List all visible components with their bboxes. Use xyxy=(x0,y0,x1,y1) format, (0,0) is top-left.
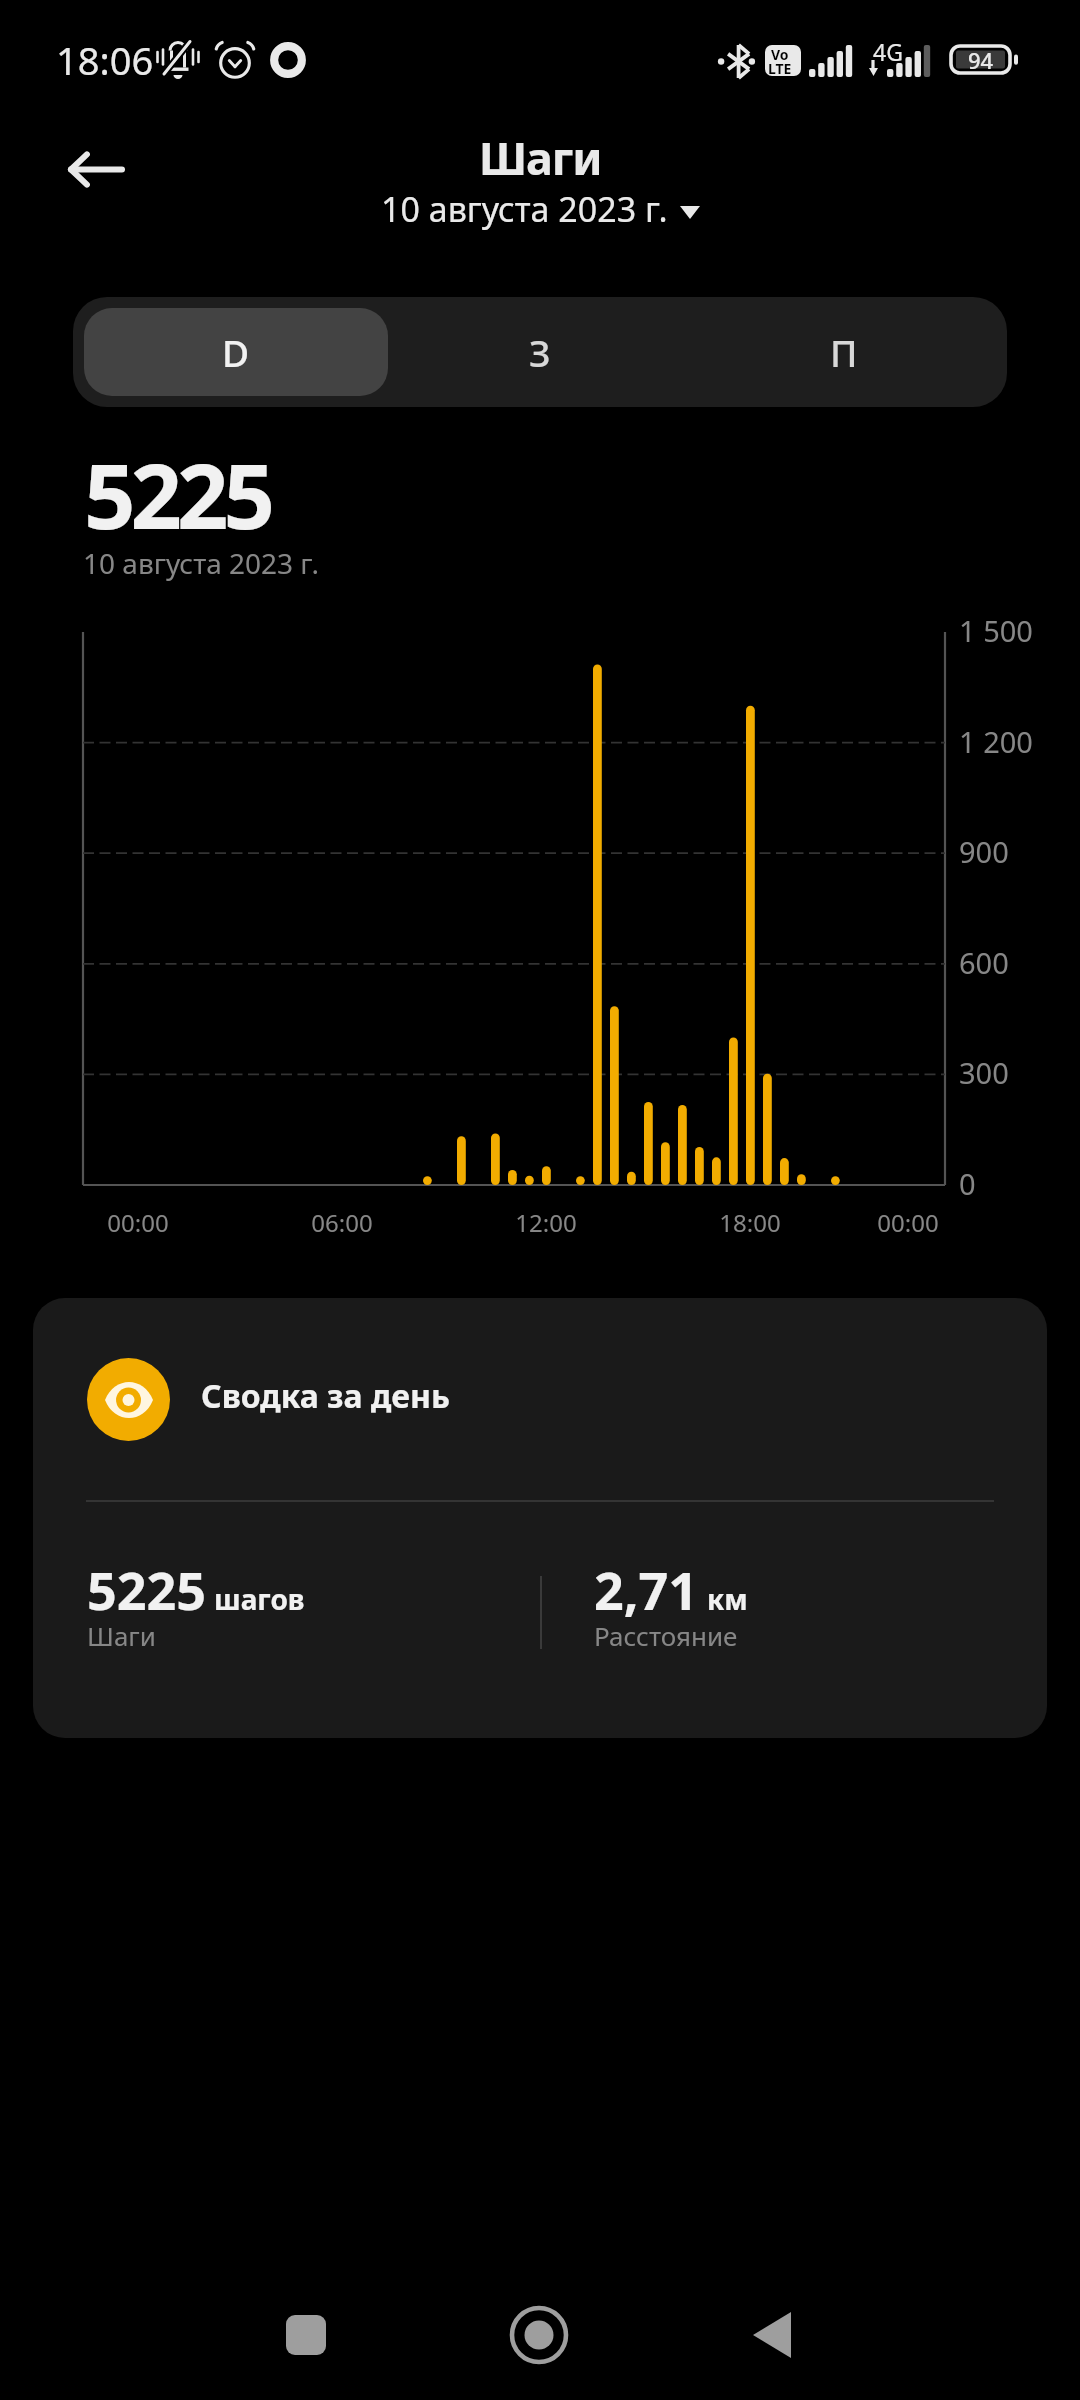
staticText: 18:06 xyxy=(56,34,154,86)
staticText: 600 xyxy=(959,943,1009,982)
button[interactable]: Назад xyxy=(44,118,146,220)
staticText: 5225 xyxy=(84,433,270,556)
button[interactable]: Последние приложения xyxy=(231,2260,381,2400)
button[interactable]: З xyxy=(388,308,692,396)
staticText: 00:00 xyxy=(877,1206,939,1239)
staticText: D xyxy=(222,327,250,377)
staticText: 94 xyxy=(968,45,994,75)
staticText: 1 200 xyxy=(959,722,1033,761)
staticText: шагов xyxy=(214,1580,305,1618)
staticText: 18:00 xyxy=(719,1206,781,1239)
staticText: 900 xyxy=(959,832,1009,871)
staticText: З xyxy=(529,327,551,377)
button[interactable]: Сводка за день xyxy=(33,1298,1047,1738)
button[interactable]: D xyxy=(84,308,388,396)
staticText: 00:00 xyxy=(107,1206,169,1239)
button[interactable]: П xyxy=(692,308,996,396)
staticText: 06:00 xyxy=(311,1206,373,1239)
staticText: Шаги xyxy=(479,127,602,188)
button[interactable]: Назад xyxy=(697,2260,847,2400)
staticText: км xyxy=(707,1580,748,1618)
staticText: Сводка за день xyxy=(201,1374,450,1418)
staticText: 10 августа 2023 г. xyxy=(381,186,668,232)
button[interactable]: 10 августа 2023 г. xyxy=(375,183,706,235)
staticText: 12:00 xyxy=(515,1206,577,1239)
staticText: Vo xyxy=(771,45,789,64)
staticText: 0 xyxy=(959,1164,976,1203)
staticText: 5225 xyxy=(87,1554,206,1625)
staticText: 300 xyxy=(959,1053,1009,1092)
staticText: Шаги xyxy=(87,1618,156,1653)
staticText: 1 500 xyxy=(959,611,1033,650)
staticText: 10 августа 2023 г. xyxy=(83,544,320,582)
staticText: 4G xyxy=(873,36,903,67)
button[interactable]: Главный экран xyxy=(464,2260,614,2400)
staticText: LTE xyxy=(768,59,792,76)
staticText: П xyxy=(830,327,858,377)
staticText: Расстояние xyxy=(594,1618,738,1653)
staticText: 2,71 xyxy=(594,1554,699,1625)
